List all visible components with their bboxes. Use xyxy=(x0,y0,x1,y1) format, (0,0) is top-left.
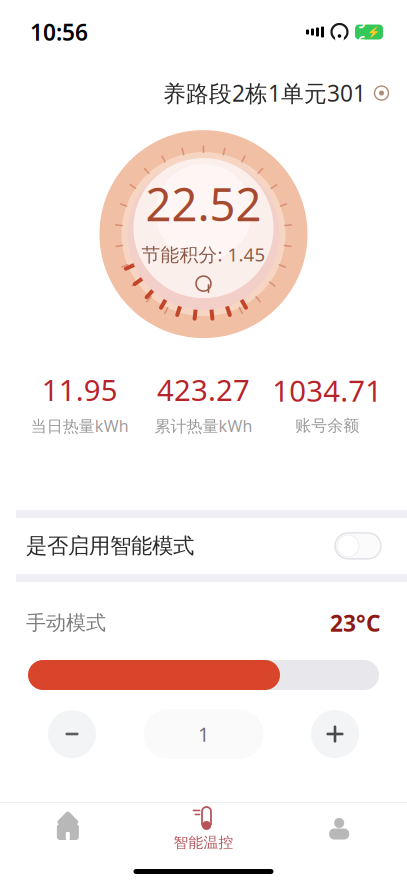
staticText: 423.27 xyxy=(157,370,250,409)
button[interactable]: Profile xyxy=(271,803,407,855)
staticText: 养路段2栋1单元301 xyxy=(163,78,366,108)
staticText: 智能温控 xyxy=(173,833,233,851)
staticText: 11.95 xyxy=(42,370,118,409)
button[interactable]: 智能温控 xyxy=(136,803,271,855)
button[interactable]: 是否启用智能模式 xyxy=(0,518,407,574)
staticText: 账号余额 xyxy=(295,416,359,436)
button[interactable]: Home xyxy=(0,803,136,855)
staticText: 22.52 xyxy=(145,174,261,234)
staticText: 是否启用智能模式 xyxy=(26,533,194,559)
staticText: 当日热量kWh xyxy=(31,415,129,436)
staticText: 96 xyxy=(358,14,366,50)
staticText: 累计热量kWh xyxy=(154,415,252,436)
staticText: 节能积分: 1.45 xyxy=(141,242,265,267)
staticText: 手动模式 xyxy=(26,611,106,635)
staticText: 1 xyxy=(198,721,209,747)
staticText: 1034.71 xyxy=(272,371,382,410)
button[interactable]: Increase xyxy=(305,704,365,764)
staticText: 10:56 xyxy=(30,17,88,47)
staticText: 23°C xyxy=(330,608,381,638)
staticText: ⚡ xyxy=(367,26,380,38)
button[interactable]: 1 xyxy=(143,704,263,764)
button[interactable]: Decrease xyxy=(42,704,102,764)
button[interactable]: 养路段2栋1单元301 xyxy=(163,72,407,114)
